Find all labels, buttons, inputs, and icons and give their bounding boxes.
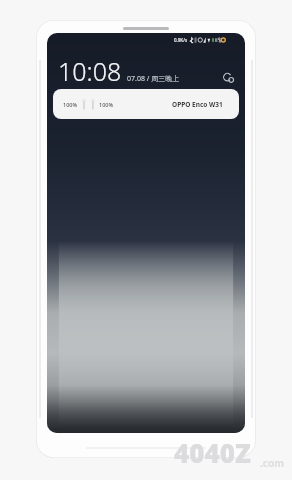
staticText: 100% xyxy=(63,101,78,108)
staticText: 07.08 / 周三晚上 xyxy=(127,74,180,84)
staticText: 0.9K/s xyxy=(174,37,188,43)
staticText: OPPO Enco W31 xyxy=(172,100,223,109)
button[interactable]: 100% xyxy=(53,89,239,119)
staticText: 4040Z xyxy=(174,435,251,470)
staticText: .com xyxy=(260,456,284,470)
staticText: 100% xyxy=(99,101,114,108)
staticText: 10:08 xyxy=(58,54,122,88)
button[interactable]: Notification settings xyxy=(222,71,236,85)
